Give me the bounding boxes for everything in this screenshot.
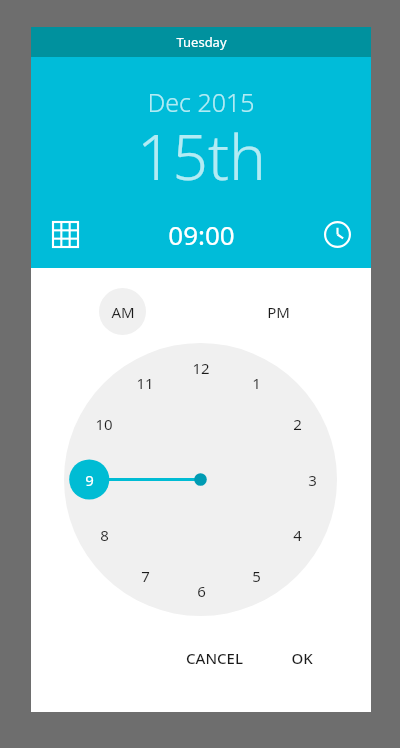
button[interactable]: OK: [274, 638, 330, 678]
button[interactable]: 15th: [31, 114, 371, 198]
staticText: AM: [111, 302, 135, 322]
button[interactable]: Dec 2015: [31, 85, 371, 119]
staticText: PM: [267, 302, 290, 322]
button[interactable]: Show clock: [315, 214, 359, 254]
staticText: 11: [136, 373, 154, 393]
button[interactable]: AM: [99, 288, 146, 335]
staticText: OK: [291, 648, 313, 668]
staticText: 8: [100, 525, 109, 545]
staticText: 6: [197, 581, 206, 601]
staticText: CANCEL: [186, 648, 243, 668]
button[interactable]: 09:00: [168, 217, 235, 252]
staticText: 5: [252, 566, 261, 586]
staticText: 10: [95, 414, 113, 434]
staticText: 4: [293, 525, 302, 545]
button[interactable]: Clock face, 9 o'clock selected: [64, 343, 337, 616]
staticText: Tuesday: [176, 33, 227, 51]
staticText: Dec 2015: [147, 85, 255, 119]
button[interactable]: Show calendar: [43, 214, 87, 254]
staticText: 2: [293, 414, 302, 434]
button[interactable]: PM: [255, 288, 302, 335]
staticText: 7: [141, 566, 150, 586]
staticText: 9: [85, 470, 94, 490]
staticText: 3: [308, 470, 317, 490]
staticText: 1: [252, 373, 261, 393]
staticText: 15th: [137, 114, 266, 198]
staticText: 12: [192, 358, 210, 378]
button[interactable]: CANCEL: [167, 638, 261, 678]
staticText: 09:00: [168, 217, 235, 252]
